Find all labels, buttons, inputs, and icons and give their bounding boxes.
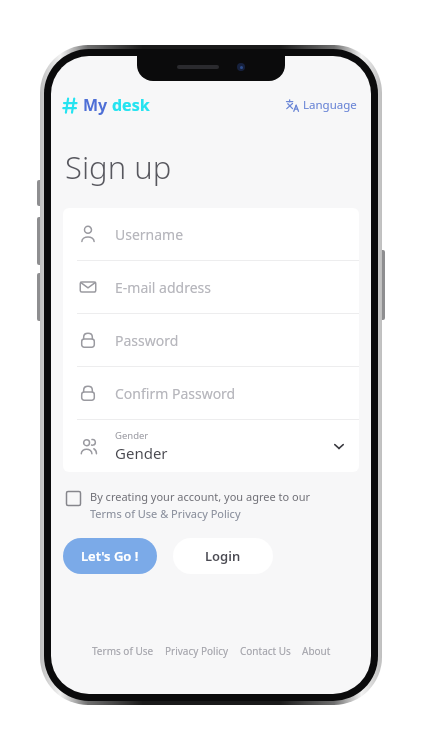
button[interactable]: Login [173,538,273,574]
staticText: Gender [115,443,168,463]
staticText: Password [115,331,179,350]
button[interactable]: Let's Go ! [63,538,157,574]
staticText: E-mail address [115,278,211,297]
staticText: Sign up [65,146,172,188]
staticText: About [302,644,331,658]
staticText: Contact Us [240,644,291,658]
staticText: Login [205,547,241,565]
button[interactable]: Username [63,208,359,261]
staticText: Language [303,97,357,113]
button[interactable]: About [298,642,335,660]
button[interactable]: By creating your account, you agree to o… [63,489,359,521]
button[interactable]: Privacy Policy [161,642,233,660]
staticText: Username [115,225,184,244]
staticText: Let's Go ! [81,547,139,565]
button[interactable]: Language [284,95,359,115]
staticText: Privacy Policy [165,644,229,658]
staticText: Gender [115,429,149,442]
button[interactable]: Terms of Use [88,642,158,660]
staticText: My [83,94,108,116]
button[interactable]: E-mail address [63,261,359,314]
button[interactable]: Confirm Password [63,367,359,420]
staticText: Confirm Password [115,384,236,403]
staticText: Terms of Use [92,644,154,658]
button[interactable]: Contact Us [236,642,295,660]
button[interactable]: Gender [63,420,359,472]
staticText: By creating your account, you agree to o… [90,489,310,504]
staticText: desk [112,94,150,116]
staticText: Terms of Use & Privacy Policy [90,506,241,521]
button[interactable]: Password [63,314,359,367]
